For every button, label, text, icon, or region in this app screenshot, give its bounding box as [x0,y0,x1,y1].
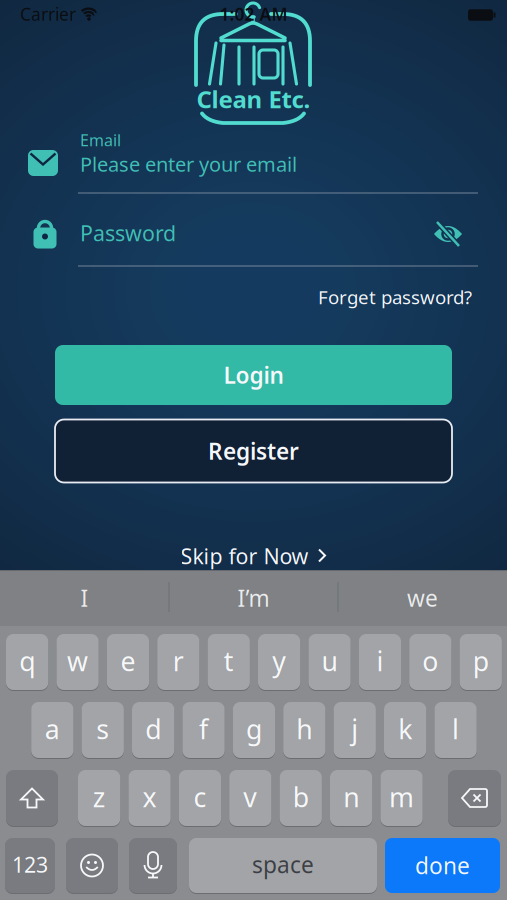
button[interactable]: f [182,702,225,759]
button[interactable]: q [6,634,48,691]
button[interactable]: x [128,770,171,827]
staticText: Please enter your email [80,151,297,177]
button[interactable]: t [208,634,250,691]
staticText: Register [208,436,299,466]
staticText: Email [80,129,121,151]
button[interactable]: Dictation [129,838,177,894]
button[interactable]: Show password [433,219,463,249]
staticText: g [246,711,262,747]
staticText: k [398,711,412,747]
button[interactable]: l [434,702,477,759]
staticText: e [120,643,135,679]
staticText: w [67,643,88,679]
button[interactable]: p [460,634,502,691]
staticText: y [272,643,286,679]
staticText: h [296,711,312,747]
staticText: i [376,643,383,679]
staticText: I [80,583,88,613]
button[interactable]: n [330,770,372,827]
staticText: 1:02 AM [219,2,287,25]
button[interactable]: Skip for Now [180,542,326,570]
button[interactable]: w [56,634,99,691]
button[interactable]: I [34,578,134,618]
staticText: j [351,711,358,747]
button[interactable]: m [380,770,423,827]
button[interactable]: v [229,770,271,827]
staticText: Clean Etc. [196,83,310,115]
staticText: u [321,643,337,679]
button[interactable]: Register [55,419,452,482]
staticText: d [145,711,161,747]
staticText: Carrier [20,2,76,25]
button[interactable]: i [359,634,401,691]
button[interactable]: Forget password? [318,285,472,309]
button[interactable]: done [385,838,500,893]
staticText: m [389,779,414,815]
staticText: space [252,849,314,879]
staticText: a [45,711,60,747]
button[interactable]: I’m [203,578,303,618]
staticText: v [243,779,257,815]
button[interactable]: space [189,838,377,894]
staticText: Skip for Now [180,542,308,570]
staticText: Login [223,360,283,390]
staticText: s [96,711,109,747]
staticText: I’m [237,583,269,613]
staticText: l [452,711,459,747]
button[interactable]: Password [28,204,480,270]
button[interactable]: h [283,702,325,759]
button[interactable]: Emoji [66,838,118,894]
button[interactable]: j [334,702,376,759]
button[interactable]: a [31,702,73,759]
staticText: n [343,779,359,815]
button[interactable]: r [157,634,199,691]
button[interactable]: Login [55,345,452,405]
staticText: 123 [12,850,48,879]
staticText: c [193,779,206,815]
staticText: r [173,643,184,679]
staticText: q [19,643,35,679]
staticText: Forget password? [318,285,472,309]
staticText: z [93,779,106,815]
staticText: o [422,643,438,679]
button[interactable]: Email [28,132,480,196]
button[interactable]: k [384,702,426,759]
button[interactable]: 123 [5,838,55,894]
staticText: Password [80,219,176,247]
button[interactable]: c [179,770,221,827]
button[interactable]: b [280,770,322,827]
button[interactable]: d [132,702,174,759]
button[interactable]: z [78,770,120,827]
button[interactable]: g [233,702,275,759]
button[interactable]: Shift [6,770,58,827]
staticText: done [415,850,470,880]
button[interactable]: e [107,634,149,691]
button[interactable]: y [258,634,300,691]
button[interactable]: we [372,578,472,618]
staticText: b [293,779,309,815]
button[interactable]: o [409,634,451,691]
staticText: p [473,643,489,679]
staticText: x [143,779,157,815]
button[interactable]: Delete [448,770,501,827]
staticText: we [407,583,438,613]
staticText: t [224,643,234,679]
button[interactable]: u [308,634,351,691]
button[interactable]: s [82,702,124,759]
staticText: f [199,711,208,747]
